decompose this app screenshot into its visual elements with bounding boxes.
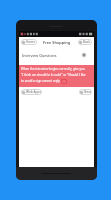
staticText: Next <box>84 90 91 94</box>
staticText: Web Apps <box>26 90 41 94</box>
button[interactable]: Highlight <box>61 79 67 84</box>
staticText: Interview Questions <box>22 53 57 58</box>
button[interactable]: Web Apps <box>21 89 42 95</box>
button[interactable]: Next <box>79 89 92 95</box>
staticText: "I think we should to it could" or "Shou… <box>21 73 86 77</box>
button[interactable]: Settings <box>82 53 86 57</box>
staticText: When the interview begins correctly, giv… <box>21 67 85 71</box>
button[interactable]: Back <box>78 39 92 45</box>
staticText: to avoid a sign cannot reply <box>21 79 60 83</box>
staticText: Home <box>26 40 36 44</box>
staticText: Back <box>83 40 91 44</box>
button[interactable]: Home <box>21 39 37 45</box>
staticText: Free Shopping <box>43 40 71 45</box>
